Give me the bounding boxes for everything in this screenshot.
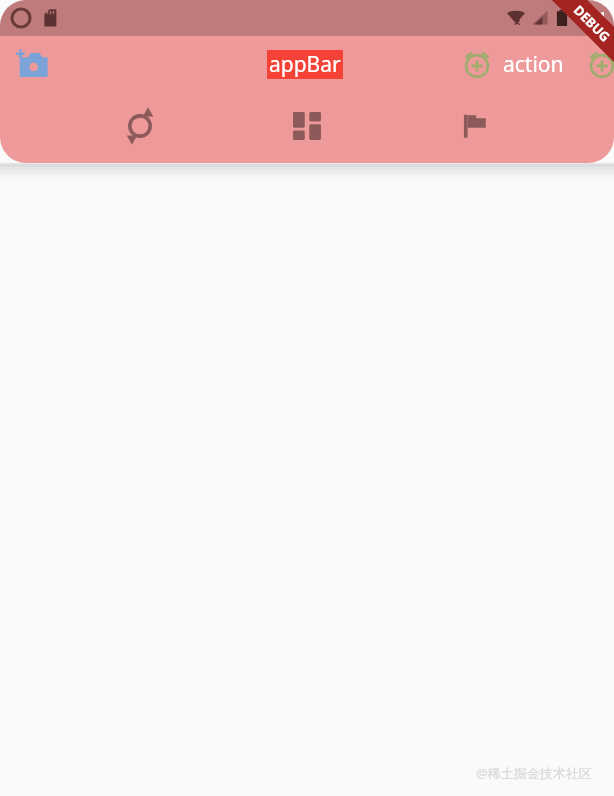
staticText: action <box>503 50 564 79</box>
button[interactable]: Sync <box>113 99 167 153</box>
button[interactable]: action <box>501 50 566 79</box>
button[interactable]: Dashboard <box>280 99 334 153</box>
button[interactable]: Add alarm <box>578 40 614 88</box>
staticText: @稀土掘金技术社区 <box>476 764 592 782</box>
button[interactable]: Flag <box>447 99 501 153</box>
button[interactable]: Add a photo <box>8 40 56 88</box>
staticText: appBar <box>269 50 341 79</box>
staticText: DEBUG <box>570 1 614 45</box>
button[interactable]: Add alarm <box>453 40 501 88</box>
staticText: 7:14 <box>574 7 606 29</box>
